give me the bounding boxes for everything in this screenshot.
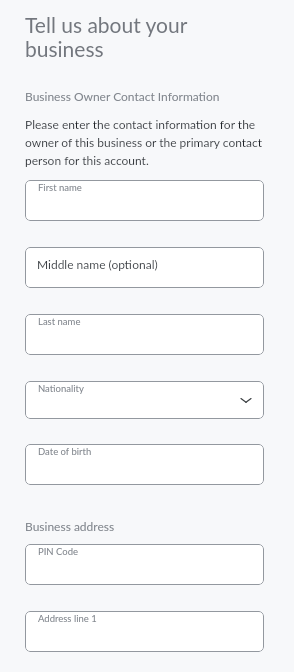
staticText: Middle name (optional) xyxy=(37,257,158,271)
button[interactable]: Date of birth xyxy=(25,444,264,485)
staticText: Business Owner Contact Information xyxy=(25,89,220,103)
button[interactable]: Nationality xyxy=(25,381,264,419)
staticText: Business address xyxy=(25,519,115,533)
button[interactable]: First name xyxy=(25,180,264,221)
staticText: Tell us about your business xyxy=(25,12,264,62)
button[interactable]: Open Nationality dropdown xyxy=(237,391,255,409)
staticText: Last name xyxy=(38,316,81,327)
button[interactable]: Middle name (optional) xyxy=(25,247,264,288)
staticText: Nationality xyxy=(38,383,84,394)
staticText: First name xyxy=(38,182,82,193)
button[interactable]: Address line 1 xyxy=(25,611,264,652)
button[interactable]: Last name xyxy=(25,314,264,355)
staticText: Date of birth xyxy=(38,446,92,457)
staticText: PIN Code xyxy=(38,546,79,557)
staticText: Address line 1 xyxy=(38,613,97,624)
button[interactable]: PIN Code xyxy=(25,544,264,585)
staticText: Please enter the contact information for… xyxy=(25,117,264,167)
